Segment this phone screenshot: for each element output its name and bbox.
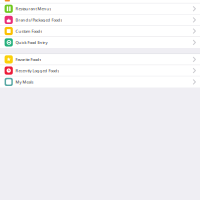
staticText: Recently Logged Foods [15, 68, 59, 73]
staticText: Custom Foods [15, 28, 42, 34]
button[interactable]: My Meals [0, 76, 200, 87]
staticText: Brands/Packaged Foods [15, 17, 62, 23]
staticText: My Meals [15, 79, 33, 85]
staticText: Quick Food Entry [15, 40, 47, 45]
button[interactable]: Quick Food Entry [0, 37, 200, 48]
button[interactable]: Favorite Foods [0, 54, 200, 65]
staticText: Restaurant Menus [15, 6, 51, 11]
button[interactable]: Restaurant Menus [0, 3, 200, 15]
staticText: Favorite Foods [15, 57, 41, 62]
button[interactable]: Custom Foods [0, 26, 200, 37]
button[interactable]: Recently Logged Foods [0, 65, 200, 76]
button[interactable]: Brands/Packaged Foods [0, 14, 200, 26]
